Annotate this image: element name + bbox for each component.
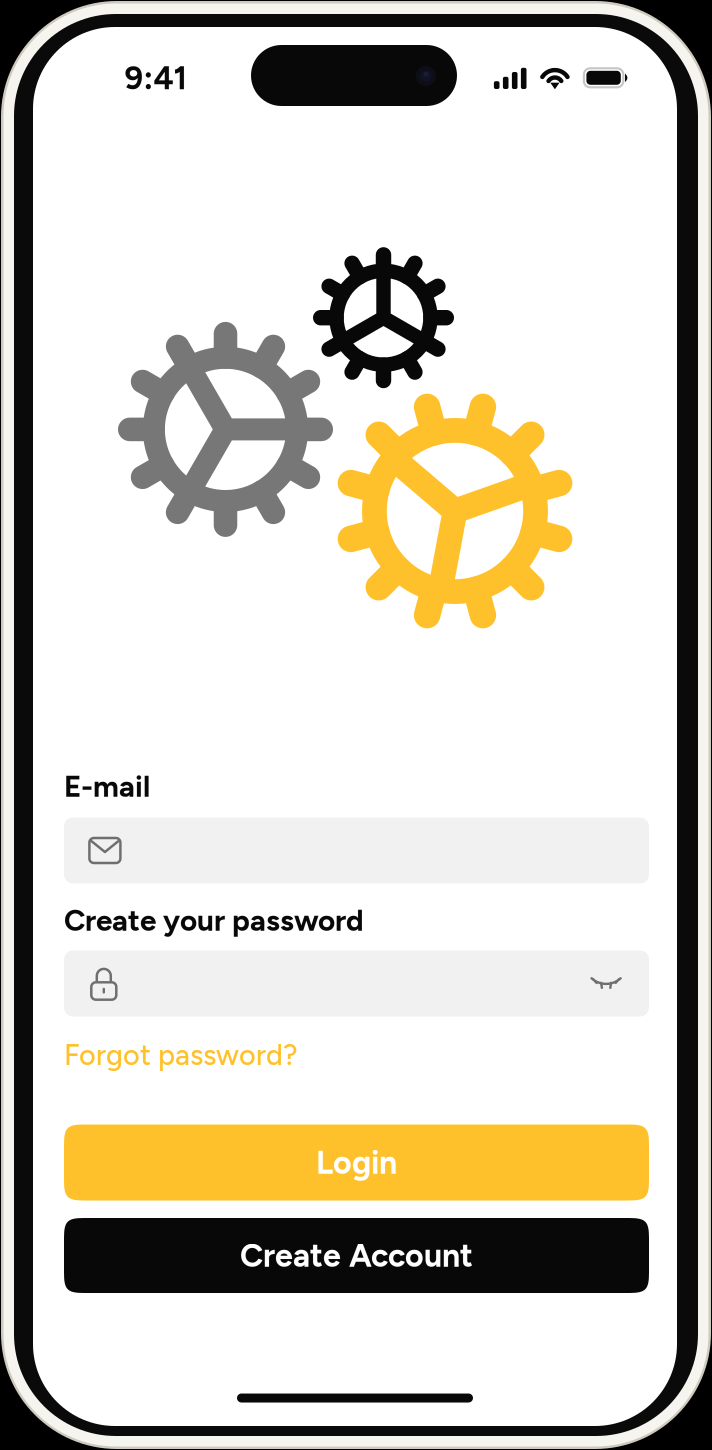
button[interactable]: Login [64,1124,649,1200]
staticText: Create your password [64,903,364,938]
button[interactable]: Create Account [64,1218,649,1293]
staticText: Create Account [240,1236,473,1275]
staticText: E-mail [64,769,150,804]
staticText: 9:41 [124,59,187,97]
staticText: Forgot password? [64,1038,298,1072]
staticText: Login [316,1143,397,1182]
button[interactable]: Forgot password? [64,1037,649,1073]
